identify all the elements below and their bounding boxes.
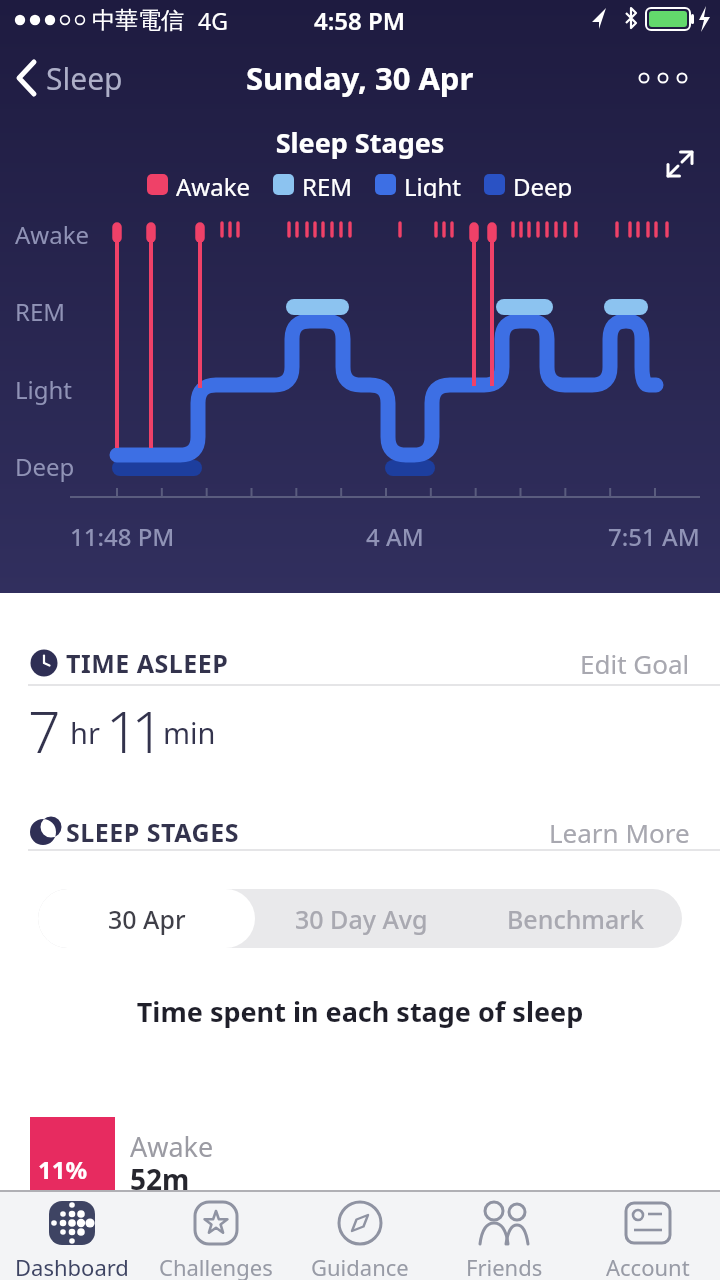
- staticText: TIME ASLEEP: [66, 646, 229, 680]
- staticText: REM: [302, 170, 353, 198]
- staticText: Friends: [466, 1252, 543, 1280]
- staticText: Benchmark: [507, 902, 644, 936]
- button[interactable]: Benchmark: [468, 889, 682, 948]
- staticText: Guidance: [311, 1252, 409, 1280]
- button[interactable]: [638, 68, 694, 88]
- button[interactable]: Guidance: [288, 1190, 432, 1280]
- staticText: 中華電信: [92, 6, 184, 35]
- button[interactable]: Learn More: [549, 815, 690, 850]
- staticText: Deep: [513, 170, 573, 198]
- staticText: Sleep: [46, 58, 123, 99]
- staticText: Awake: [130, 1128, 214, 1165]
- staticText: Sunday, 30 Apr: [246, 57, 474, 99]
- staticText: Awake: [15, 218, 90, 251]
- staticText: 11: [106, 692, 158, 770]
- staticText: Dashboard: [15, 1252, 129, 1280]
- button[interactable]: 30 Day Avg: [255, 889, 468, 948]
- staticText: 11%: [38, 1153, 88, 1186]
- staticText: hr: [70, 713, 100, 752]
- staticText: Light: [15, 373, 73, 406]
- staticText: Sleep Stages: [0, 124, 720, 161]
- button[interactable]: Sleep: [14, 56, 123, 100]
- staticText: 11:48 PM: [70, 520, 175, 553]
- button[interactable]: [662, 146, 698, 182]
- staticText: 7: [28, 692, 61, 770]
- staticText: 7:51 AM: [608, 520, 700, 553]
- staticText: Light: [404, 170, 462, 198]
- staticText: Deep: [15, 450, 75, 483]
- staticText: Challenges: [159, 1252, 273, 1280]
- staticText: Account: [606, 1252, 690, 1280]
- staticText: Time spent in each stage of sleep: [0, 993, 720, 1030]
- button[interactable]: 30 Apr: [38, 889, 255, 948]
- staticText: 4:58 PM: [314, 4, 406, 37]
- button[interactable]: Edit Goal: [580, 646, 690, 681]
- button[interactable]: Challenges: [144, 1190, 288, 1280]
- staticText: 4G: [198, 5, 228, 36]
- staticText: 52m: [130, 1160, 190, 1198]
- staticText: REM: [15, 295, 66, 328]
- button[interactable]: Account: [576, 1190, 720, 1280]
- staticText: min: [163, 713, 216, 752]
- button[interactable]: Friends: [432, 1190, 576, 1280]
- staticText: SLEEP STAGES: [66, 815, 239, 849]
- staticText: 4 AM: [366, 520, 424, 553]
- staticText: 30 Day Avg: [295, 902, 428, 936]
- staticText: 30 Apr: [108, 902, 186, 936]
- button[interactable]: Dashboard: [0, 1190, 144, 1280]
- staticText: Awake: [176, 170, 251, 198]
